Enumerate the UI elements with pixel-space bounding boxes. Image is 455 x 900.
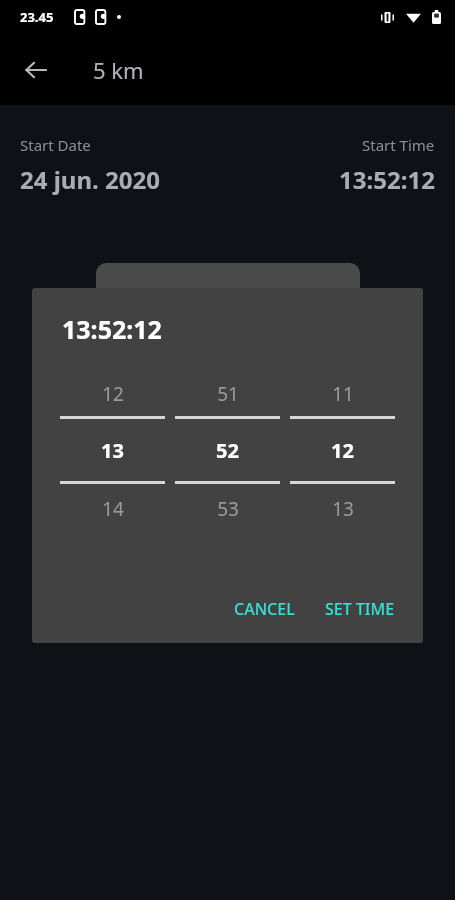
staticText: 11 xyxy=(332,381,354,407)
staticText: Start Time xyxy=(362,135,435,155)
staticText: 13 xyxy=(101,437,124,464)
staticText: 13:52:12 xyxy=(62,312,162,346)
staticText: SET TIME xyxy=(325,598,395,620)
staticText: 53 xyxy=(217,496,239,522)
staticText: 24 jun. 2020 xyxy=(20,163,160,196)
button[interactable]: Back xyxy=(12,46,60,94)
button[interactable]: 12 xyxy=(58,372,167,534)
button[interactable]: 51 xyxy=(173,372,282,534)
staticText: CANCEL xyxy=(234,598,295,620)
button[interactable]: CANCEL xyxy=(224,589,305,629)
staticText: 12 xyxy=(102,381,124,407)
staticText: 51 xyxy=(217,381,239,407)
staticText: 5 km xyxy=(93,55,144,85)
staticText: 14 xyxy=(102,496,124,522)
staticText: 13:52:12 xyxy=(339,163,435,196)
button[interactable]: SET TIME xyxy=(315,589,405,629)
staticText: 52 xyxy=(216,437,239,464)
staticText: Start Date xyxy=(20,135,91,155)
button[interactable]: Start Time xyxy=(339,135,435,196)
button[interactable]: Start Date xyxy=(20,135,160,196)
staticText: 23.45 xyxy=(20,8,54,26)
staticText: 13 xyxy=(332,496,354,522)
staticText: 12 xyxy=(331,437,354,464)
button[interactable]: 11 xyxy=(288,372,397,534)
button[interactable]: NOW xyxy=(96,263,360,323)
staticText: NOW xyxy=(209,283,247,303)
